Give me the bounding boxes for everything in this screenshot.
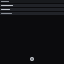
button[interactable] [0,0,64,3]
button[interactable] [0,4,64,7]
button[interactable] [0,12,64,15]
button[interactable] [0,8,64,11]
button[interactable]: Add [30,57,34,61]
